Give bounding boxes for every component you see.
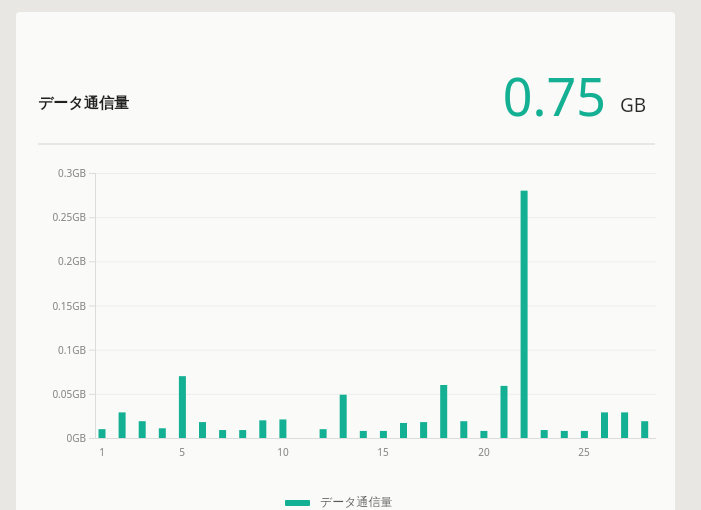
staticText: 20 (469, 445, 499, 459)
staticText: 5 (167, 445, 197, 459)
staticText: 0.2GB (16, 254, 86, 268)
staticText: 10 (268, 445, 298, 459)
staticText: 0.25GB (16, 210, 86, 224)
button[interactable]: データ通信量 (271, 492, 421, 510)
staticText: 0.1GB (16, 343, 86, 357)
staticText: 25 (569, 445, 599, 459)
staticText: 0.05GB (16, 387, 86, 401)
button[interactable]: データ通信量 (16, 12, 675, 510)
staticText: 0GB (16, 431, 86, 445)
staticText: GB (620, 92, 647, 118)
staticText: データ通信量 (320, 494, 393, 509)
staticText: 0.75 (446, 60, 606, 122)
staticText: 0.3GB (16, 166, 86, 180)
staticText: 0.15GB (16, 299, 86, 313)
staticText: データ通信量 (38, 94, 129, 113)
staticText: 15 (368, 445, 398, 459)
other: データ通信量グラフ (16, 12, 675, 510)
staticText: 1 (87, 445, 117, 459)
